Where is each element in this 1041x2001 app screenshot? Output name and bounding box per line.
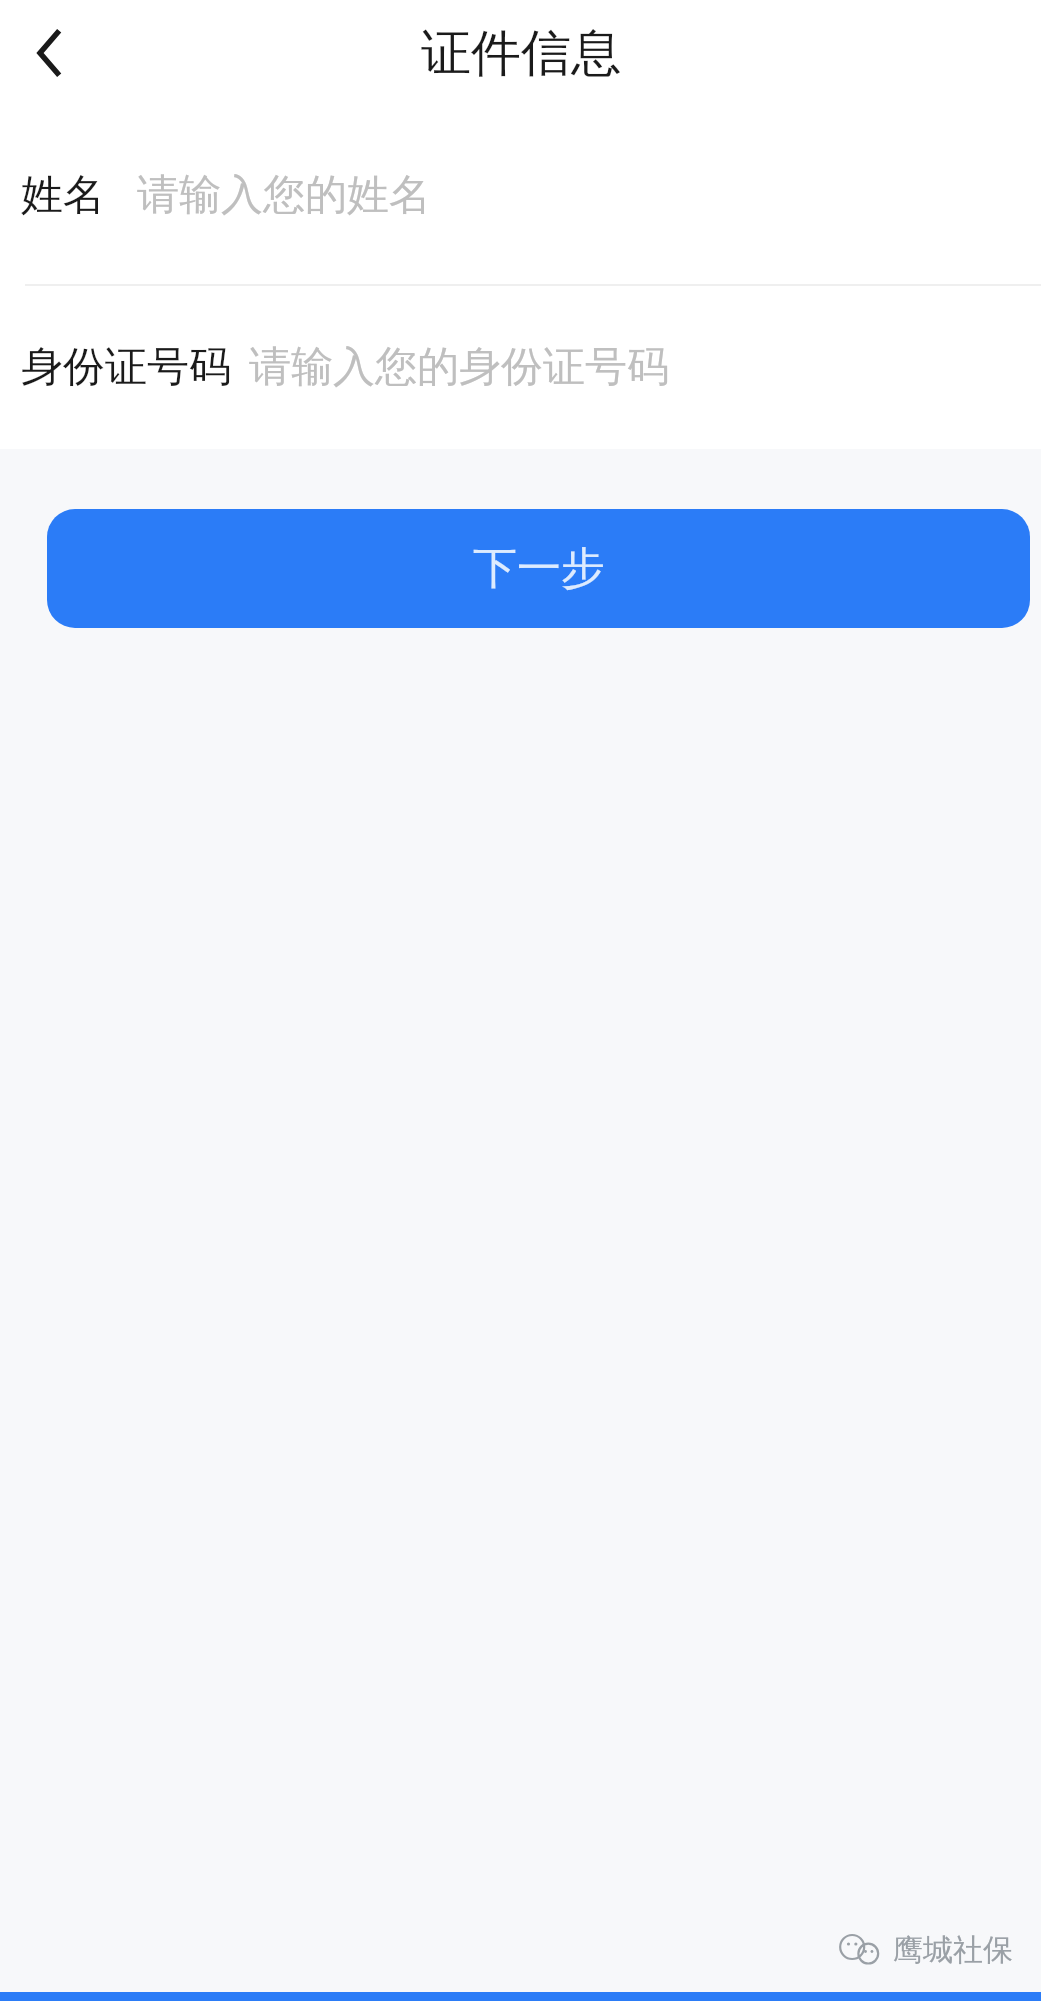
staticText: 下一步 <box>473 541 605 596</box>
staticText: 请输入您的姓名 <box>137 169 431 222</box>
staticText: 请输入您的身份证号码 <box>249 341 669 394</box>
staticText: 身份证号码 <box>21 341 231 394</box>
button[interactable]: 身份证号码 <box>0 286 1041 449</box>
button[interactable]: 姓名 <box>0 105 1041 285</box>
staticText: 鹰城社保 <box>893 1931 1013 1969</box>
button[interactable]: 下一步 <box>47 509 1030 628</box>
staticText: 证件信息 <box>421 22 621 85</box>
staticText: 姓名 <box>21 169 105 222</box>
button[interactable]: Back <box>14 18 84 88</box>
